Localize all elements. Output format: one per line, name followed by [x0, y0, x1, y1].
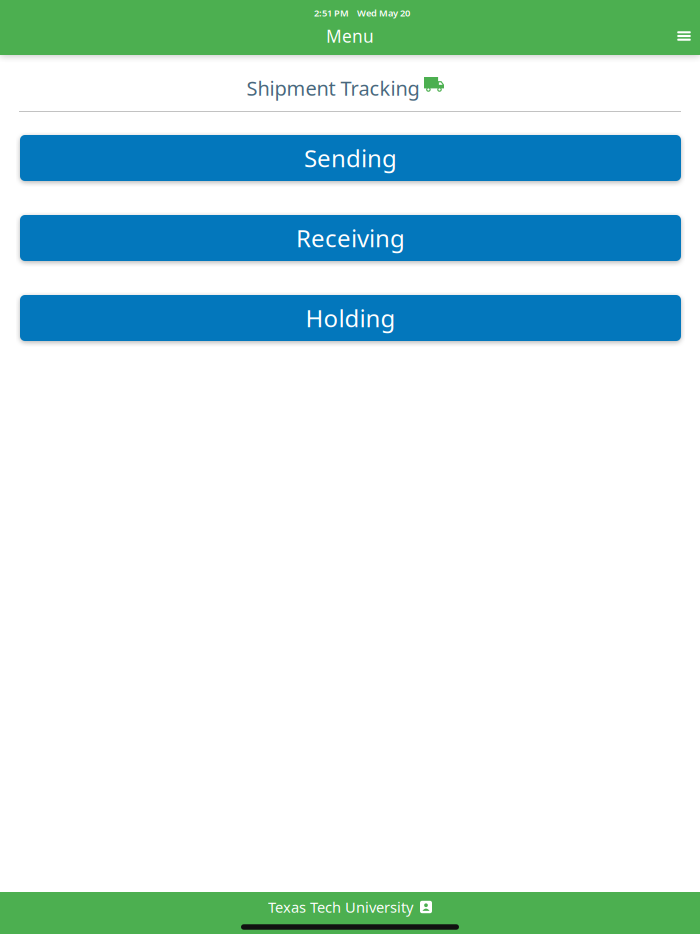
staticText: Wed May 20: [357, 7, 410, 19]
button[interactable]: Texas Tech University: [0, 892, 700, 914]
staticText: Holding: [305, 302, 395, 334]
staticText: Shipment Tracking: [246, 75, 419, 101]
button[interactable]: Holding: [20, 295, 681, 341]
staticText: Sending: [304, 142, 397, 174]
button[interactable]: Menu: [664, 16, 700, 56]
staticText: Receiving: [296, 222, 405, 254]
button[interactable]: Receiving: [20, 215, 681, 261]
button[interactable]: Sending: [20, 135, 681, 181]
staticText: 2:51 PM: [314, 7, 349, 19]
staticText: Texas Tech University: [268, 897, 413, 917]
staticText: Menu: [326, 24, 374, 47]
